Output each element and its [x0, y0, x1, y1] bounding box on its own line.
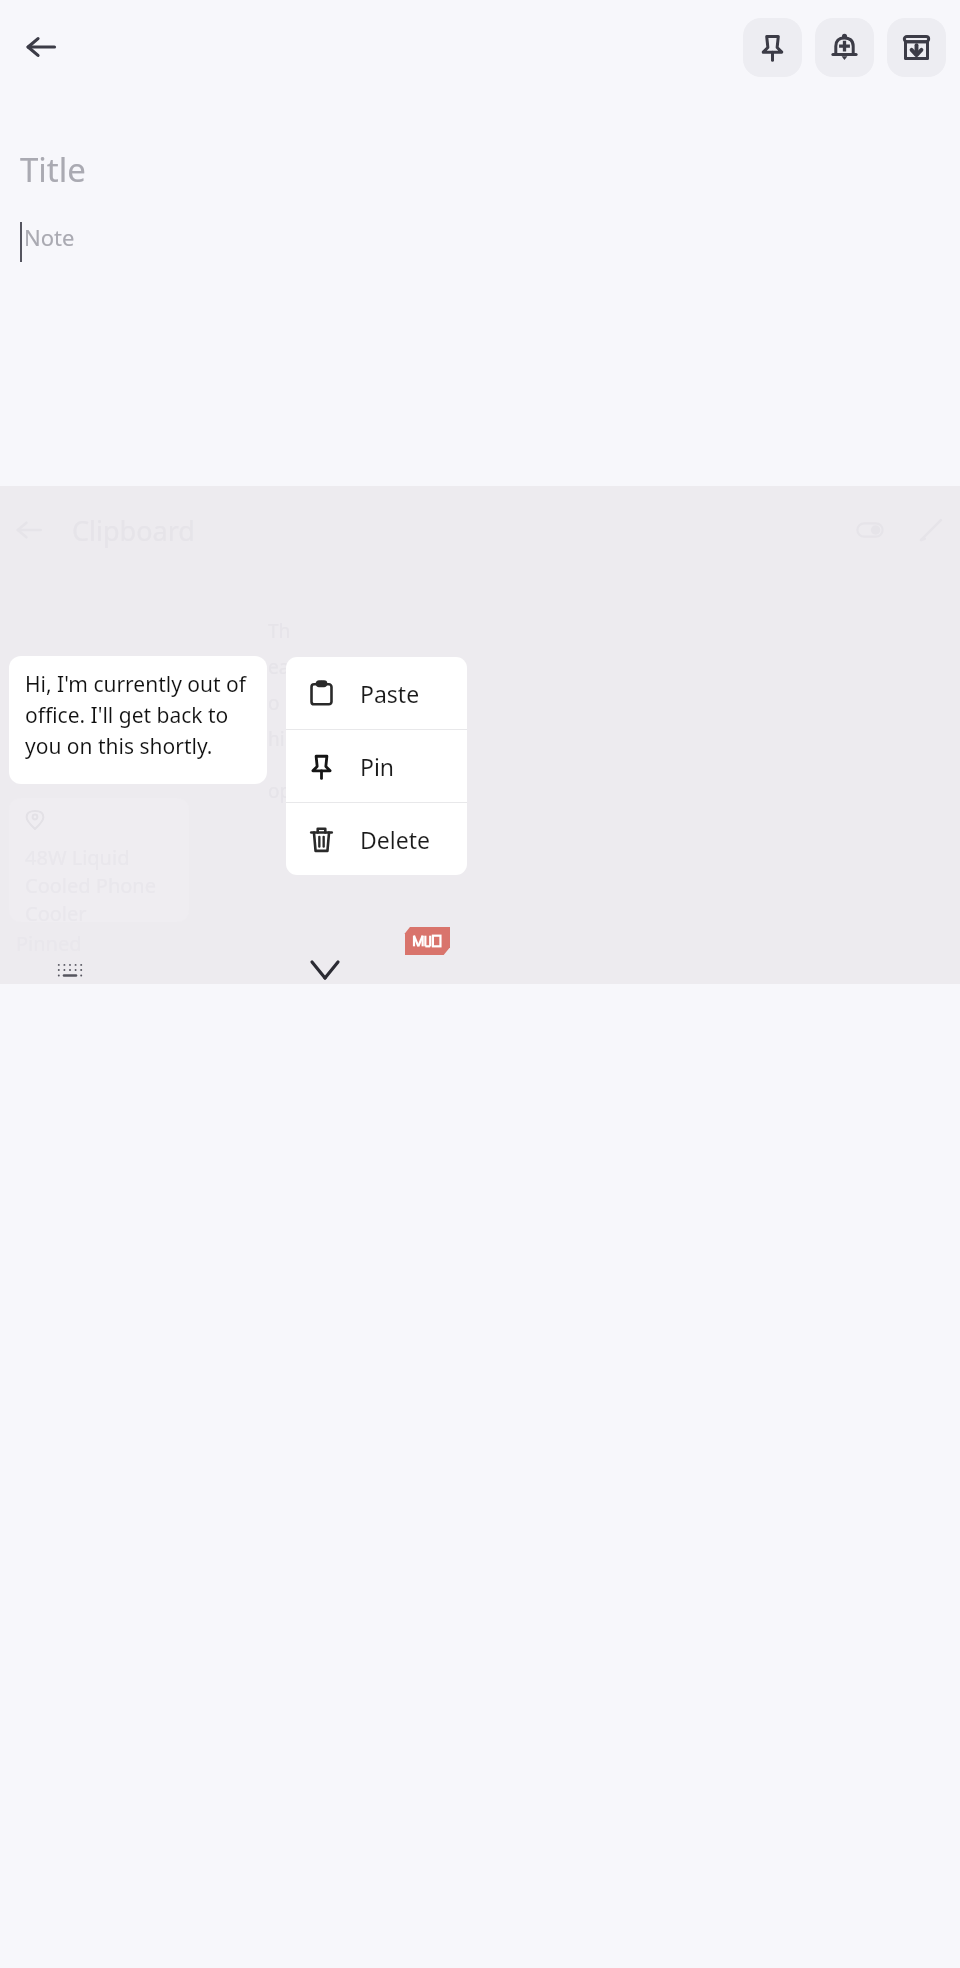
staticText: Hi, I'm currently out of office. I'll ge… [25, 670, 255, 760]
staticText: Title [20, 147, 86, 192]
button[interactable]: Pin [743, 18, 802, 77]
button[interactable]: Hide keyboard [310, 960, 340, 980]
staticText: op [268, 778, 292, 804]
button[interactable]: Delete [286, 803, 467, 875]
button[interactable]: Paste [286, 657, 467, 729]
staticText: Note [24, 222, 75, 252]
button[interactable]: Back [10, 16, 72, 78]
button[interactable]: Add reminder [815, 18, 874, 77]
button[interactable]: Archive [887, 18, 946, 77]
staticText: ea [268, 654, 290, 680]
button[interactable]: Pin [286, 730, 467, 802]
staticText: Pin [360, 751, 395, 782]
staticText: Paste [360, 678, 420, 709]
staticText: Delete [360, 824, 430, 855]
button[interactable]: Hi, I'm currently out of office. I'll ge… [9, 656, 267, 784]
button[interactable]: Keyboard [56, 962, 84, 978]
